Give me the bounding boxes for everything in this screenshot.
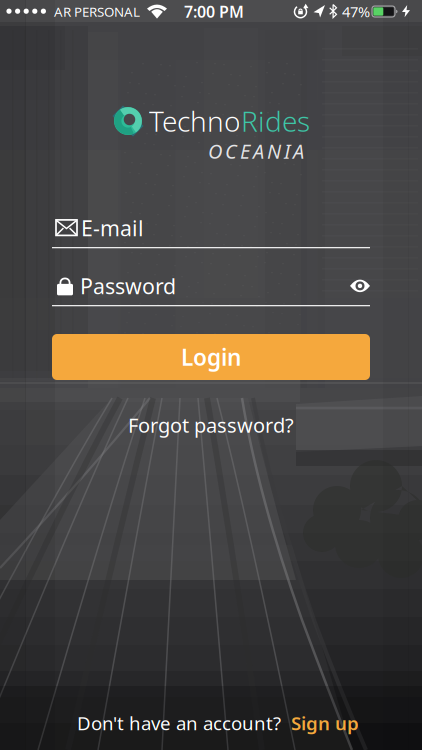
staticText: E-mail — [81, 214, 144, 242]
staticText: Techno — [149, 102, 241, 140]
staticText: Rides — [241, 102, 310, 140]
staticText: AR PERSONAL — [54, 3, 140, 20]
button[interactable]: Login — [52, 334, 370, 380]
staticText: OCEANIA — [208, 138, 304, 164]
staticText: Login — [181, 342, 241, 372]
button[interactable]: Forgot password? — [101, 410, 321, 440]
staticText: 7:00 PM — [184, 1, 244, 22]
staticText: 47% — [342, 2, 370, 21]
button[interactable]: Sign up — [291, 711, 359, 735]
staticText: Don't have an account? — [77, 711, 281, 735]
button[interactable]: Password — [52, 272, 370, 306]
staticText: Forgot password? — [128, 412, 294, 438]
staticText: Password — [80, 272, 176, 300]
button[interactable]: E-mail — [52, 214, 370, 248]
staticText: Sign up — [291, 711, 359, 735]
